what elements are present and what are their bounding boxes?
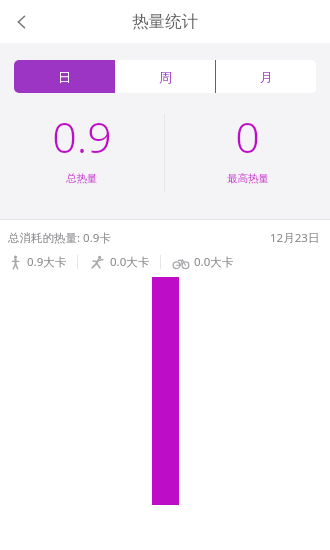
staticText: 0.0大卡 [194,254,234,270]
staticText: 0 [235,107,260,166]
button[interactable]: Back [0,0,44,43]
staticText: 0.9 [52,107,112,166]
staticText: 0.0大卡 [110,254,150,270]
staticText: 12月23日 [270,230,320,246]
staticText: 热量统计 [132,11,198,32]
staticText: 日 [58,69,71,85]
button[interactable]: 日 [14,60,114,93]
staticText: 0.9大卡 [27,254,67,270]
button[interactable]: 月 [216,60,316,93]
staticText: 总消耗的热量: 0.9卡 [8,230,111,246]
staticText: 周 [159,69,172,85]
staticText: 最高热量 [227,172,269,185]
staticText: 总热量 [66,172,98,185]
staticText: 月 [260,69,273,85]
button[interactable]: 周 [115,60,215,93]
